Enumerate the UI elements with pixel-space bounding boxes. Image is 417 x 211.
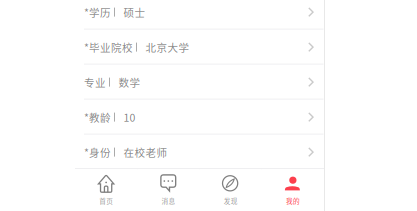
button[interactable]: *身份: [84, 135, 323, 170]
staticText: *身份: [84, 144, 111, 160]
staticText: 首页: [99, 196, 113, 206]
staticText: 我的: [286, 196, 300, 206]
staticText: 消息: [161, 196, 175, 206]
staticText: *学历: [84, 4, 111, 20]
staticText: 在校老师: [123, 144, 167, 160]
staticText: 数学: [118, 74, 140, 90]
button[interactable]: *毕业院校: [84, 30, 323, 65]
button[interactable]: *教龄: [84, 100, 323, 135]
button[interactable]: 发现: [199, 169, 262, 211]
button[interactable]: *学历: [84, 0, 323, 30]
button[interactable]: 首页: [75, 169, 137, 211]
staticText: 10: [123, 109, 135, 125]
staticText: 北京大学: [145, 39, 189, 55]
staticText: 专业: [84, 74, 106, 90]
staticText: *教龄: [84, 109, 111, 125]
staticText: 发现: [224, 196, 238, 206]
staticText: *毕业院校: [84, 39, 133, 55]
button[interactable]: 专业: [84, 65, 323, 100]
staticText: 硕士: [123, 4, 145, 20]
button[interactable]: 消息: [137, 169, 199, 211]
button[interactable]: 我的: [262, 169, 324, 211]
